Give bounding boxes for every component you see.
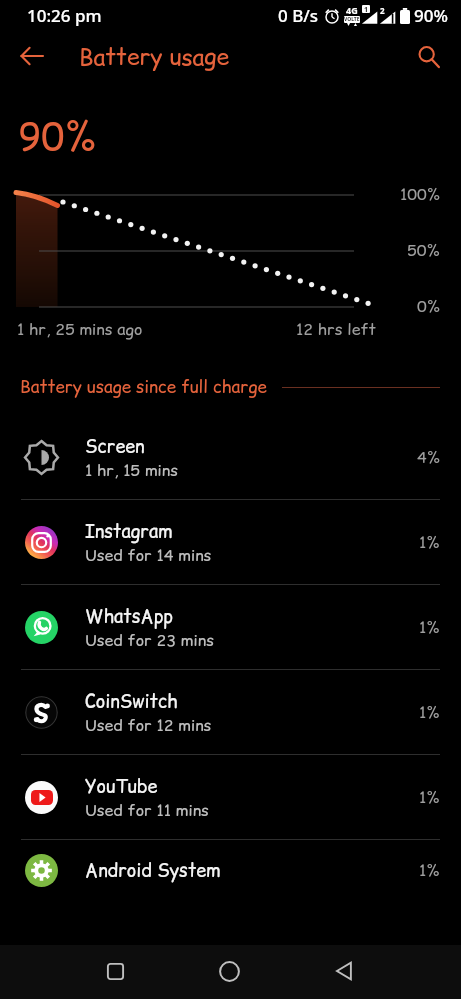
staticText: 1% xyxy=(419,786,440,808)
staticText: 1 hr, 25 mins ago xyxy=(17,318,143,340)
staticText: Used for 14 mins xyxy=(85,544,212,566)
staticText: CoinSwitch xyxy=(85,689,178,714)
staticText: 12 hrs left xyxy=(296,318,377,340)
staticText: 90% xyxy=(18,110,96,163)
staticText: YouTube xyxy=(85,774,158,799)
button[interactable]: Navigate up xyxy=(10,41,54,71)
staticText: 1% xyxy=(419,859,440,881)
staticText: Screen xyxy=(85,434,145,459)
staticText: 1 hr, 15 mins xyxy=(85,459,178,481)
staticText: 1% xyxy=(419,701,440,723)
button[interactable]: Android System xyxy=(0,840,461,900)
staticText: 1 xyxy=(364,5,369,13)
staticText: Instagram xyxy=(85,519,173,544)
staticText: 4% xyxy=(417,446,440,468)
staticText: 1% xyxy=(419,616,440,638)
staticText: 90% xyxy=(414,4,448,27)
staticText: Battery usage xyxy=(79,41,230,71)
button[interactable]: Home xyxy=(205,947,253,995)
button[interactable]: Screen xyxy=(0,415,461,499)
button[interactable]: Recent apps xyxy=(91,947,139,995)
staticText: 100% xyxy=(400,183,440,205)
staticText: 2 xyxy=(380,5,385,16)
staticText: 10:26 pm xyxy=(27,4,102,27)
staticText: Used for 12 mins xyxy=(85,714,212,736)
staticText: Android System xyxy=(85,858,221,883)
button[interactable]: WhatsApp xyxy=(0,585,461,669)
staticText: 1% xyxy=(419,531,440,553)
button[interactable]: CoinSwitch xyxy=(0,670,461,754)
staticText: VOLTE xyxy=(344,16,360,23)
button[interactable]: Back xyxy=(320,947,368,995)
staticText: 0 B/s xyxy=(278,4,319,27)
staticText: WhatsApp xyxy=(85,604,173,629)
button[interactable]: Search xyxy=(406,41,450,71)
button[interactable]: Instagram xyxy=(0,500,461,584)
staticText: Used for 11 mins xyxy=(85,799,209,821)
staticText: Battery usage since full charge xyxy=(20,375,267,399)
staticText: 4G xyxy=(346,4,358,16)
staticText: 0% xyxy=(417,295,440,317)
button[interactable]: YouTube xyxy=(0,755,461,839)
staticText: 50% xyxy=(407,239,440,261)
staticText: Used for 23 mins xyxy=(85,629,214,651)
